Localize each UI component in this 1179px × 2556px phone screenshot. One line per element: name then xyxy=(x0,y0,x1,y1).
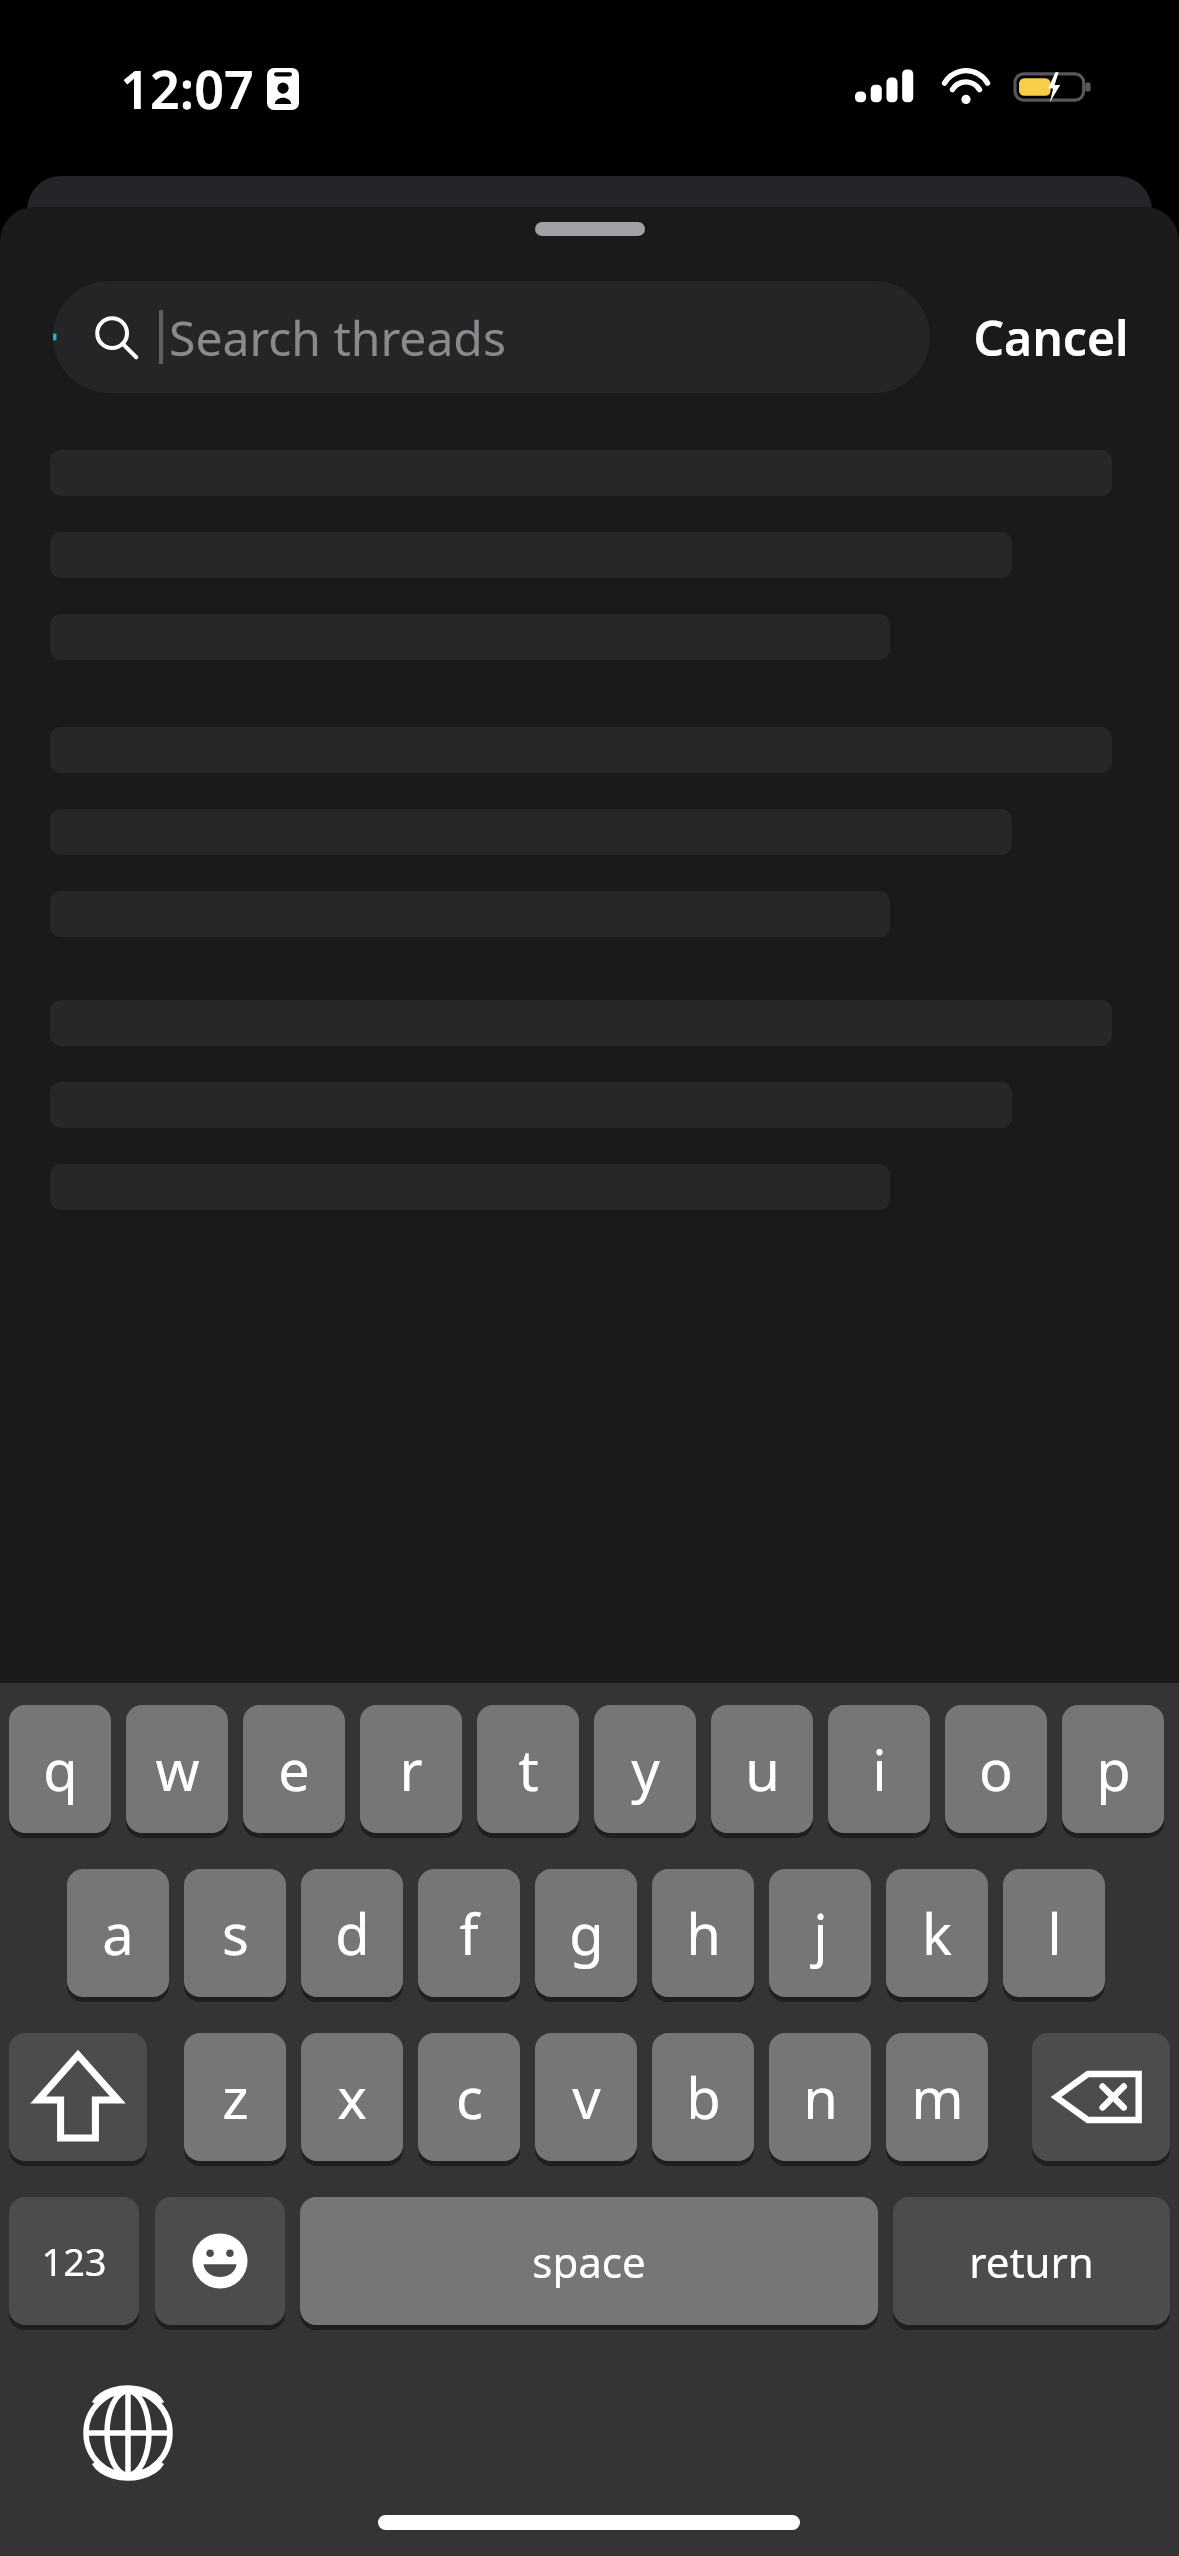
staticText: p xyxy=(1096,1731,1131,1807)
staticText: b xyxy=(686,2059,721,2135)
button[interactable]: a xyxy=(67,1869,169,1997)
button[interactable]: u xyxy=(711,1705,813,1833)
button[interactable]: e xyxy=(243,1705,345,1833)
staticText: f xyxy=(459,1895,479,1971)
staticText: i xyxy=(872,1731,887,1807)
staticText: r xyxy=(399,1731,423,1807)
button[interactable]: x xyxy=(301,2033,403,2161)
button[interactable]: p xyxy=(1062,1705,1164,1833)
button[interactable]: n xyxy=(769,2033,871,2161)
staticText: 12:07 xyxy=(120,53,254,124)
staticText: s xyxy=(222,1895,249,1971)
staticText: k xyxy=(922,1895,952,1971)
staticText: w xyxy=(155,1731,200,1807)
button[interactable]: q xyxy=(9,1705,111,1833)
button[interactable]: Cancel xyxy=(945,281,1157,393)
button[interactable]: h xyxy=(652,1869,754,1997)
staticText: a xyxy=(102,1895,134,1971)
button[interactable]: c xyxy=(418,2033,520,2161)
staticText: t xyxy=(518,1731,539,1807)
staticText: j xyxy=(813,1895,828,1971)
button[interactable]: l xyxy=(1003,1869,1105,1997)
staticText: n xyxy=(803,2059,838,2135)
button[interactable]: z xyxy=(184,2033,286,2161)
staticText: z xyxy=(222,2059,249,2135)
button[interactable]: return xyxy=(893,2197,1170,2325)
staticText: u xyxy=(745,1731,780,1807)
button[interactable]: Shift xyxy=(9,2033,147,2161)
staticText: l xyxy=(1047,1895,1062,1971)
button[interactable]: w xyxy=(126,1705,228,1833)
button[interactable]: s xyxy=(184,1869,286,1997)
button[interactable]: j xyxy=(769,1869,871,1997)
staticText: v xyxy=(572,2059,601,2135)
staticText: Search threads xyxy=(169,305,506,370)
button[interactable]: k xyxy=(886,1869,988,1997)
staticText: Cancel xyxy=(973,305,1129,370)
button[interactable]: 123 xyxy=(9,2197,139,2325)
button[interactable]: o xyxy=(945,1705,1047,1833)
button[interactable]: Search threads xyxy=(53,281,930,393)
staticText: space xyxy=(532,2233,646,2290)
staticText: g xyxy=(569,1895,604,1971)
button[interactable]: f xyxy=(418,1869,520,1997)
staticText: return xyxy=(969,2233,1094,2290)
button[interactable]: r xyxy=(360,1705,462,1833)
button[interactable]: Delete xyxy=(1032,2033,1170,2161)
staticText: c xyxy=(456,2059,483,2135)
staticText: d xyxy=(335,1895,370,1971)
button[interactable]: space xyxy=(300,2197,878,2325)
staticText: y xyxy=(631,1731,660,1807)
staticText: q xyxy=(43,1731,78,1807)
staticText: h xyxy=(686,1895,721,1971)
button[interactable]: b xyxy=(652,2033,754,2161)
button[interactable]: i xyxy=(828,1705,930,1833)
staticText: m xyxy=(911,2059,964,2135)
staticText: e xyxy=(278,1731,310,1807)
button[interactable]: v xyxy=(535,2033,637,2161)
button[interactable]: d xyxy=(301,1869,403,1997)
button[interactable]: t xyxy=(477,1705,579,1833)
button[interactable]: y xyxy=(594,1705,696,1833)
button[interactable]: Switch keyboard xyxy=(78,2383,178,2483)
button[interactable]: m xyxy=(886,2033,988,2161)
staticText: x xyxy=(337,2059,367,2135)
staticText: 123 xyxy=(41,2235,107,2287)
button[interactable]: Emoji xyxy=(155,2197,285,2325)
staticText: o xyxy=(979,1731,1013,1807)
button[interactable]: g xyxy=(535,1869,637,1997)
